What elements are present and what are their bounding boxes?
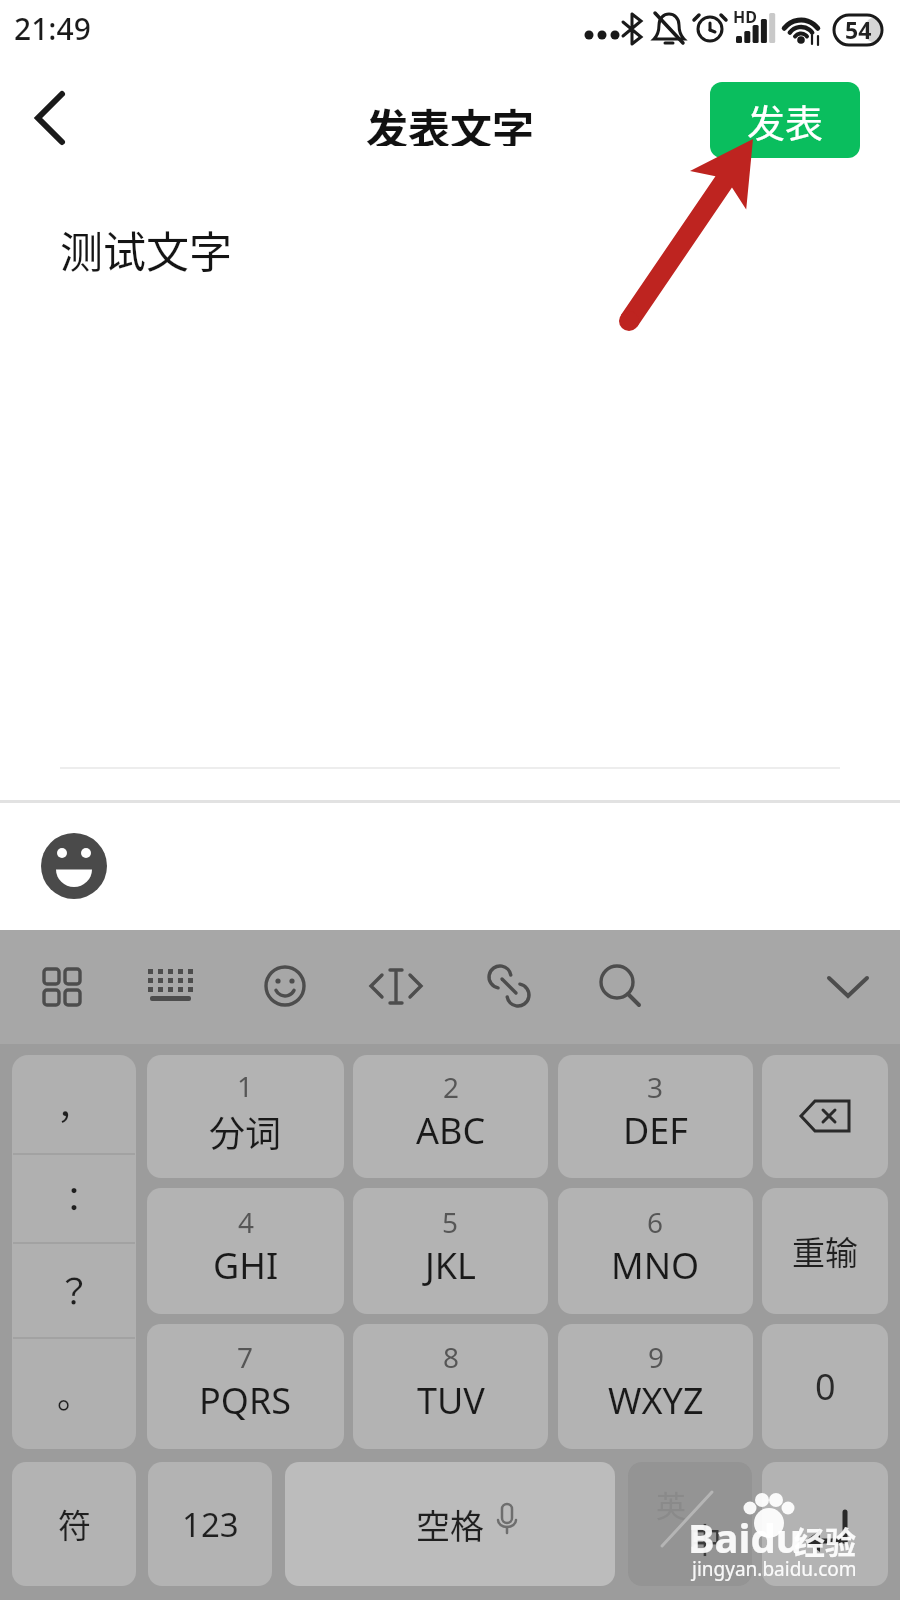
staticText: 发表 <box>747 93 824 148</box>
staticText: 符 <box>58 1500 91 1548</box>
button[interactable]: 重输 <box>762 1188 888 1314</box>
button[interactable]: 9 <box>558 1324 753 1449</box>
button[interactable] <box>31 958 91 1018</box>
staticText: jingyan.baidu.com <box>692 1556 857 1582</box>
button[interactable]: 7 <box>147 1324 344 1449</box>
staticText: ABC <box>416 1106 486 1155</box>
staticText: 测试文字 <box>60 218 232 280</box>
staticText: ： <box>57 1173 91 1222</box>
staticText: DEF <box>623 1106 688 1155</box>
button[interactable]: 2 <box>353 1055 548 1178</box>
staticText: 7 <box>237 1338 254 1376</box>
staticText: 4 <box>238 1203 255 1241</box>
staticText: 。 <box>57 1369 91 1418</box>
staticText: JKL <box>425 1241 476 1290</box>
staticText: 5 <box>442 1203 459 1241</box>
button[interactable] <box>628 1462 752 1586</box>
staticText: MNO <box>611 1241 700 1290</box>
staticText: 中 <box>688 1514 722 1563</box>
button[interactable]: 。 <box>12 1337 136 1449</box>
staticText: 1 <box>237 1067 254 1105</box>
staticText: Baidu <box>688 1510 802 1564</box>
button[interactable] <box>366 958 426 1018</box>
staticText: 英 <box>656 1482 686 1525</box>
button[interactable]: 8 <box>353 1324 548 1449</box>
button[interactable]: 3 <box>558 1055 753 1178</box>
button[interactable]: 123 <box>148 1462 272 1586</box>
button[interactable]: ， <box>12 1055 136 1153</box>
button[interactable] <box>254 958 314 1018</box>
staticText: TUV <box>417 1376 485 1425</box>
staticText: WXYZ <box>608 1376 704 1425</box>
button[interactable] <box>589 958 649 1018</box>
staticText: 重输 <box>792 1227 858 1275</box>
staticText: 0 <box>815 1362 836 1411</box>
staticText: 2 <box>443 1068 460 1106</box>
button[interactable]: 符 <box>12 1462 136 1586</box>
staticText: 经验 <box>794 1518 856 1563</box>
button[interactable]: 空格 <box>285 1462 615 1586</box>
staticText: 分词 <box>209 1105 282 1157</box>
button[interactable] <box>479 958 539 1018</box>
button[interactable] <box>762 1462 888 1586</box>
staticText: ？ <box>57 1265 91 1314</box>
button[interactable]: 0 <box>762 1324 888 1449</box>
staticText: HD <box>733 6 757 28</box>
button[interactable]: ？ <box>12 1242 136 1337</box>
button[interactable] <box>24 92 76 144</box>
button[interactable]: 5 <box>353 1188 548 1314</box>
staticText: 21:49 <box>14 8 91 49</box>
button[interactable]: 1 <box>147 1055 344 1178</box>
button[interactable] <box>142 958 202 1018</box>
staticText: 6 <box>647 1203 664 1241</box>
staticText: 123 <box>182 1502 239 1547</box>
button[interactable] <box>816 958 876 1018</box>
staticText: GHI <box>213 1241 279 1290</box>
staticText: 空格 <box>416 1500 484 1549</box>
staticText: 发表文字 <box>366 96 535 146</box>
staticText: 3 <box>647 1068 664 1106</box>
button[interactable]: ： <box>12 1153 136 1242</box>
button[interactable]: 6 <box>558 1188 753 1314</box>
button[interactable] <box>40 832 108 900</box>
staticText: 54 <box>845 14 872 44</box>
staticText: 8 <box>443 1338 460 1376</box>
button[interactable] <box>12 1055 136 1449</box>
staticText: 9 <box>648 1338 665 1376</box>
staticText: PQRS <box>199 1376 292 1425</box>
staticText: ， <box>57 1080 91 1129</box>
button[interactable]: 4 <box>147 1188 344 1314</box>
button[interactable]: 发表 <box>710 82 860 158</box>
button[interactable] <box>762 1055 888 1178</box>
